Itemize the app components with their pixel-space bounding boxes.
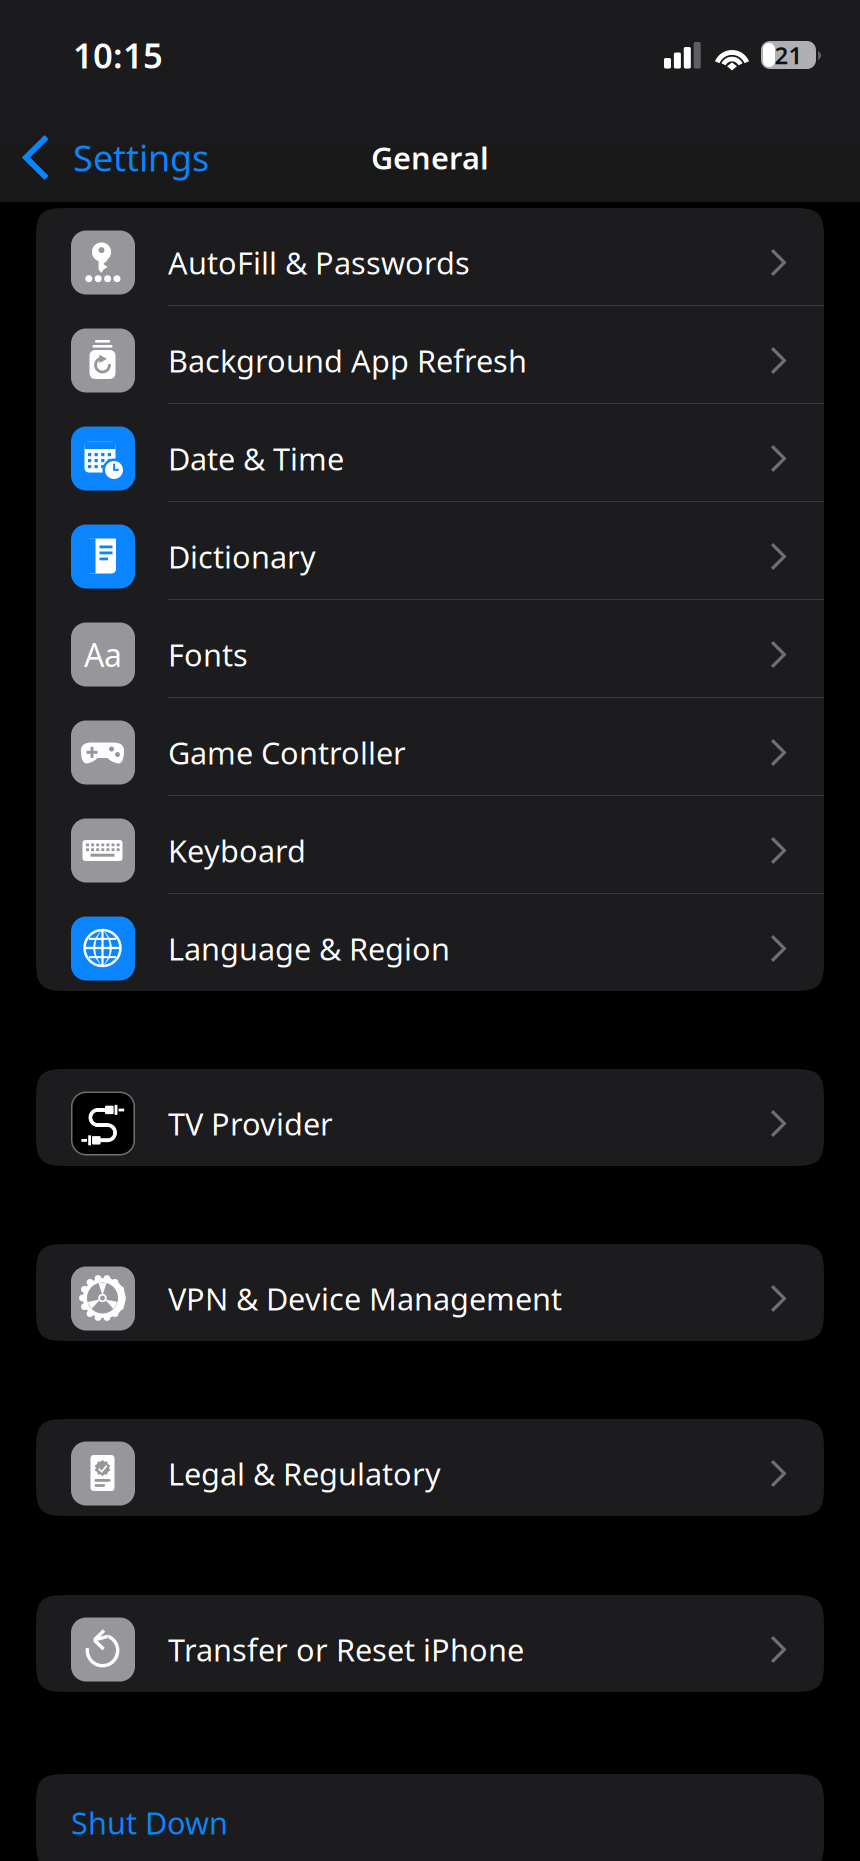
- staticText: 10:15: [73, 32, 163, 78]
- staticText: Language & Region: [168, 928, 450, 969]
- staticText: Legal & Regulatory: [168, 1453, 441, 1494]
- staticText: Transfer or Reset iPhone: [168, 1629, 524, 1670]
- button[interactable]: TV Provider: [36, 1069, 824, 1166]
- button[interactable]: Aa: [36, 600, 824, 698]
- button[interactable]: Settings: [0, 117, 223, 197]
- button[interactable]: VPN & Device Management: [36, 1244, 824, 1341]
- button[interactable]: Game Controller: [36, 698, 824, 796]
- staticText: Keyboard: [168, 830, 306, 871]
- staticText: Game Controller: [168, 732, 406, 773]
- staticText: 21: [774, 39, 802, 71]
- staticText: Settings: [73, 134, 209, 181]
- staticText: Background App Refresh: [168, 340, 527, 381]
- staticText: Dictionary: [168, 536, 316, 577]
- button[interactable]: Keyboard: [36, 796, 824, 894]
- button[interactable]: Transfer or Reset iPhone: [36, 1595, 824, 1692]
- staticText: General: [371, 137, 489, 178]
- staticText: Shut Down: [71, 1802, 228, 1843]
- staticText: TV Provider: [168, 1103, 333, 1144]
- button[interactable]: Dictionary: [36, 502, 824, 600]
- button[interactable]: Shut Down: [36, 1774, 824, 1861]
- staticText: Date & Time: [168, 438, 344, 479]
- staticText: Fonts: [168, 634, 248, 675]
- button[interactable]: Legal & Regulatory: [36, 1419, 824, 1516]
- button[interactable]: Date & Time: [36, 404, 824, 502]
- staticText: Aa: [84, 633, 122, 676]
- staticText: AutoFill & Passwords: [168, 242, 470, 283]
- button[interactable]: Language & Region: [36, 894, 824, 991]
- button[interactable]: Background App Refresh: [36, 306, 824, 404]
- staticText: VPN & Device Management: [168, 1278, 562, 1319]
- button[interactable]: AutoFill & Passwords: [36, 208, 824, 306]
